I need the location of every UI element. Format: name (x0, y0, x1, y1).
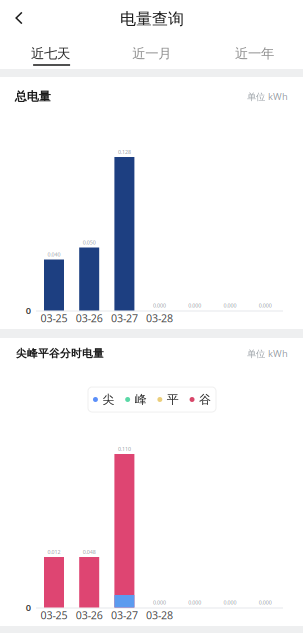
staticText: 0.110 (118, 445, 131, 453)
staticText: 0.012 (47, 548, 60, 556)
staticText: 单位 kWh (247, 90, 288, 103)
staticText: 03-27 (111, 608, 138, 622)
button[interactable]: Back (2, 1, 36, 35)
staticText: 0.000 (259, 599, 272, 606)
staticText: 03-26 (76, 608, 103, 622)
staticText: 0 (26, 304, 31, 317)
staticText: 尖 (102, 392, 114, 407)
staticText: 0.000 (153, 302, 166, 309)
staticText: 0.040 (47, 251, 60, 258)
staticText: 0.000 (259, 302, 272, 309)
staticText: 0.050 (83, 239, 96, 246)
button[interactable]: 近七天 (3, 35, 98, 69)
staticText: 近一年 (235, 45, 274, 62)
staticText: 03-25 (40, 608, 67, 622)
staticText: 0.000 (188, 302, 201, 309)
staticText: 峰 (135, 392, 147, 407)
staticText: 0.000 (153, 599, 166, 606)
staticText: 近一月 (132, 45, 171, 62)
staticText: 单位 kWh (247, 347, 288, 360)
staticText: 03-28 (146, 608, 173, 622)
staticText: 0.000 (223, 302, 236, 309)
staticText: 电量查询 (120, 9, 184, 29)
staticText: 0 (26, 601, 31, 614)
staticText: 03-27 (111, 311, 138, 325)
staticText: 尖峰平谷分时电量 (16, 347, 104, 360)
staticText: 总电量 (15, 89, 51, 104)
button[interactable]: 近一月 (104, 35, 199, 69)
staticText: 03-28 (146, 311, 173, 325)
staticText: 0.048 (83, 548, 96, 556)
staticText: 0.000 (188, 599, 201, 606)
staticText: 平 (167, 392, 179, 407)
staticText: 0.000 (223, 599, 236, 606)
button[interactable]: 近一年 (207, 35, 302, 69)
staticText: 谷 (199, 392, 211, 407)
staticText: 0.128 (118, 148, 131, 156)
staticText: 03-25 (40, 311, 67, 325)
staticText: 03-26 (76, 311, 103, 325)
staticText: 近七天 (31, 45, 70, 62)
